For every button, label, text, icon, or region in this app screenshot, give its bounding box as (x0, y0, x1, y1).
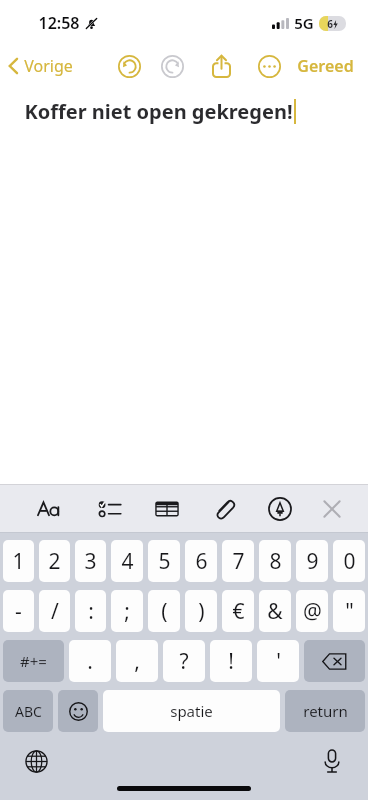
button[interactable]: : (75, 590, 106, 632)
staticText: ; (124, 597, 130, 626)
button[interactable]: return (285, 690, 365, 732)
staticText: ? (179, 647, 189, 676)
button[interactable]: Close keyboard (313, 490, 351, 528)
button[interactable]: 9 (296, 540, 328, 582)
staticText: 0 (343, 547, 356, 576)
staticText: ' (276, 647, 281, 676)
staticText: 2 (48, 547, 61, 576)
staticText: ) (198, 597, 205, 626)
button[interactable]: Attach (205, 490, 243, 528)
button[interactable]: & (259, 590, 291, 632)
staticText: 6 (327, 17, 333, 31)
button[interactable]: Share (204, 49, 238, 83)
button[interactable]: Change keyboard language (17, 742, 55, 780)
button[interactable]: . (69, 640, 111, 682)
staticText: return (303, 701, 348, 721)
button[interactable]: Table (148, 490, 186, 528)
button[interactable]: - (3, 590, 34, 632)
button[interactable]: @ (296, 590, 328, 632)
button[interactable]: spatie (103, 690, 280, 732)
button[interactable]: 0 (333, 540, 365, 582)
staticText: € (232, 597, 245, 626)
button[interactable]: Vorige (0, 51, 79, 81)
button[interactable]: " (333, 590, 365, 632)
staticText: " (345, 597, 354, 626)
button[interactable]: , (116, 640, 158, 682)
button[interactable]: Redo (155, 49, 189, 83)
button[interactable]: Backspace (304, 640, 365, 682)
staticText: ! (228, 647, 234, 676)
button[interactable]: Gereed (283, 51, 368, 81)
button[interactable]: ? (163, 640, 205, 682)
button[interactable]: 4 (111, 540, 143, 582)
staticText: Koffer niet open gekregen! (24, 98, 293, 125)
button[interactable]: Undo (112, 49, 146, 83)
staticText: 4 (121, 547, 134, 576)
button[interactable]: 5 (148, 540, 180, 582)
staticText: 5 (158, 547, 171, 576)
staticText: #+= (20, 651, 47, 671)
staticText: Gereed (297, 55, 354, 77)
staticText: 9 (306, 547, 319, 576)
button[interactable]: Dictate (313, 742, 351, 780)
staticText: / (51, 597, 59, 626)
button[interactable]: 7 (222, 540, 254, 582)
button[interactable]: Markup (261, 490, 299, 528)
staticText: - (15, 597, 22, 626)
staticText: 1 (12, 547, 25, 576)
staticText: : (88, 597, 94, 626)
staticText: 5G (294, 13, 314, 33)
staticText: Vorige (24, 55, 73, 77)
button[interactable]: 8 (259, 540, 291, 582)
staticText: 6 (195, 547, 208, 576)
button[interactable]: ( (148, 590, 180, 632)
button[interactable]: More options (252, 49, 286, 83)
staticText: 12:58 (38, 12, 80, 34)
staticText: 8 (269, 547, 282, 576)
button[interactable]: 2 (39, 540, 70, 582)
button[interactable]: ) (185, 590, 217, 632)
staticText: ABC (15, 702, 42, 721)
button[interactable]: 3 (75, 540, 106, 582)
button[interactable]: / (39, 590, 70, 632)
button[interactable]: Checklist (91, 490, 129, 528)
staticText: @ (303, 597, 322, 626)
button[interactable]: ! (210, 640, 252, 682)
button[interactable]: ABC (3, 690, 53, 732)
button[interactable]: 6 (185, 540, 217, 582)
staticText: spatie (170, 701, 213, 721)
button[interactable]: ' (257, 640, 299, 682)
button[interactable]: ; (111, 590, 143, 632)
staticText: 7 (232, 547, 245, 576)
staticText: ( (161, 597, 168, 626)
button[interactable]: Emoji (58, 690, 98, 732)
button[interactable]: 1 (3, 540, 34, 582)
button[interactable]: Text format (30, 490, 68, 528)
button[interactable]: € (222, 590, 254, 632)
staticText: . (87, 647, 93, 676)
button[interactable]: #+= (3, 640, 64, 682)
staticText: & (267, 597, 283, 626)
staticText: 3 (84, 547, 97, 576)
staticText: , (134, 647, 140, 676)
